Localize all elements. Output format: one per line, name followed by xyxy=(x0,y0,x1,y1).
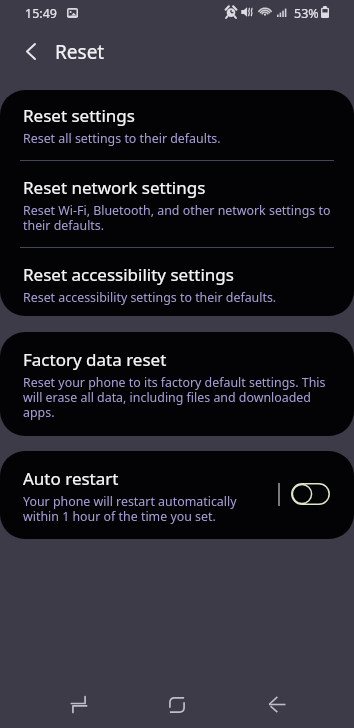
staticText: Reset xyxy=(55,39,105,65)
button[interactable]: Reset network settings xyxy=(0,161,354,247)
staticText: Auto restart xyxy=(23,467,119,490)
button[interactable]: Back xyxy=(254,682,300,727)
button[interactable]: Recent apps xyxy=(56,682,102,727)
staticText: Reset your phone to its factory default … xyxy=(23,374,326,420)
staticText: Reset accessibility settings xyxy=(23,263,234,286)
staticText: Reset all settings to their defaults. xyxy=(23,130,221,147)
button[interactable]: Navigate up xyxy=(9,29,53,73)
button[interactable]: Reset settings xyxy=(0,90,354,160)
staticText: Reset accessibility settings to their de… xyxy=(23,289,277,306)
staticText: Reset network settings xyxy=(23,176,206,199)
button[interactable]: Home xyxy=(154,682,200,727)
button[interactable]: Auto restart xyxy=(0,451,354,539)
button[interactable]: Reset accessibility settings xyxy=(0,248,354,316)
staticText: 53% xyxy=(294,5,319,22)
button[interactable]: Auto restart toggle xyxy=(288,477,332,511)
staticText: Factory data reset xyxy=(23,348,167,371)
button[interactable]: Factory data reset xyxy=(0,332,354,436)
staticText: Reset Wi-Fi, Bluetooth, and other networ… xyxy=(23,202,331,233)
staticText: Reset settings xyxy=(23,104,135,127)
staticText: 15:49 xyxy=(25,5,57,22)
staticText: Your phone will restart automatically wi… xyxy=(23,493,237,524)
